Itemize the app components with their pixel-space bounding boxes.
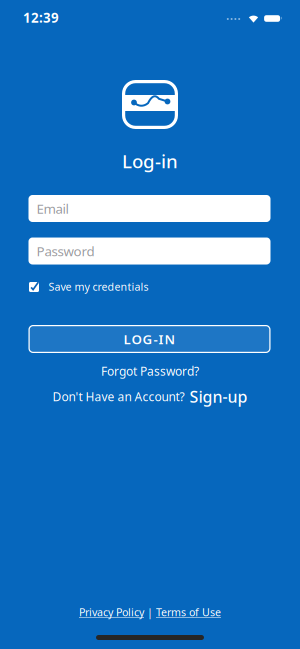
staticText: Save my credentials	[48, 279, 148, 294]
staticText: Terms of Use	[156, 605, 221, 619]
button[interactable]: L O G - I N	[28, 325, 270, 353]
button[interactable]: Save my credentials	[28, 279, 148, 294]
button[interactable]: Forgot Password?	[101, 363, 199, 379]
staticText: Log-in	[122, 149, 178, 173]
staticText: 12:39	[23, 9, 59, 26]
staticText: Password	[36, 242, 94, 260]
staticText: Privacy Policy	[79, 605, 144, 619]
staticText: L O G - I N	[123, 330, 175, 348]
button[interactable]: Email	[28, 195, 270, 222]
staticText: Sign-up	[189, 386, 247, 407]
staticText: Don't Have an Account?	[52, 388, 184, 404]
button[interactable]: Privacy Policy	[79, 605, 221, 619]
staticText: Forgot Password?	[101, 363, 199, 379]
button[interactable]: Password	[28, 237, 270, 264]
staticText: |	[147, 605, 153, 619]
button[interactable]: Don't Have an Account?	[52, 386, 247, 407]
staticText: Email	[36, 200, 68, 217]
